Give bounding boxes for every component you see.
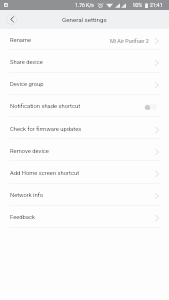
button[interactable]: Notification shade shortcut toggle — [144, 104, 157, 110]
staticText: Rename — [10, 37, 32, 44]
button[interactable]: Feedback — [0, 207, 169, 228]
staticText: General settings — [62, 16, 107, 23]
staticText: Add Home screen shortcut — [10, 170, 80, 177]
button[interactable]: Add Home screen shortcut — [0, 163, 169, 184]
button[interactable]: Remove device — [0, 141, 169, 162]
staticText: Remove device — [10, 148, 49, 155]
staticText: Feedback — [10, 214, 35, 221]
staticText: Mi Air Purifuer 2 — [110, 38, 149, 44]
staticText: Device group — [10, 81, 44, 88]
button[interactable]: Device group — [0, 74, 169, 95]
staticText: Network info — [10, 192, 44, 199]
button[interactable]: Notification shade shortcut — [0, 96, 169, 117]
staticText: 92% — [133, 2, 143, 8]
staticText: Notification shade shortcut — [10, 103, 81, 110]
button[interactable]: Back — [6, 14, 17, 25]
button[interactable]: Network info — [0, 185, 169, 206]
button[interactable]: Share device — [0, 52, 169, 73]
button[interactable]: Rename — [0, 30, 169, 51]
button[interactable]: Check for firmware updates — [0, 119, 169, 140]
staticText: 1.76 K/s — [75, 2, 94, 8]
staticText: Share device — [10, 59, 43, 66]
staticText: 21:41 — [150, 2, 163, 8]
staticText: Check for firmware updates — [10, 126, 82, 133]
